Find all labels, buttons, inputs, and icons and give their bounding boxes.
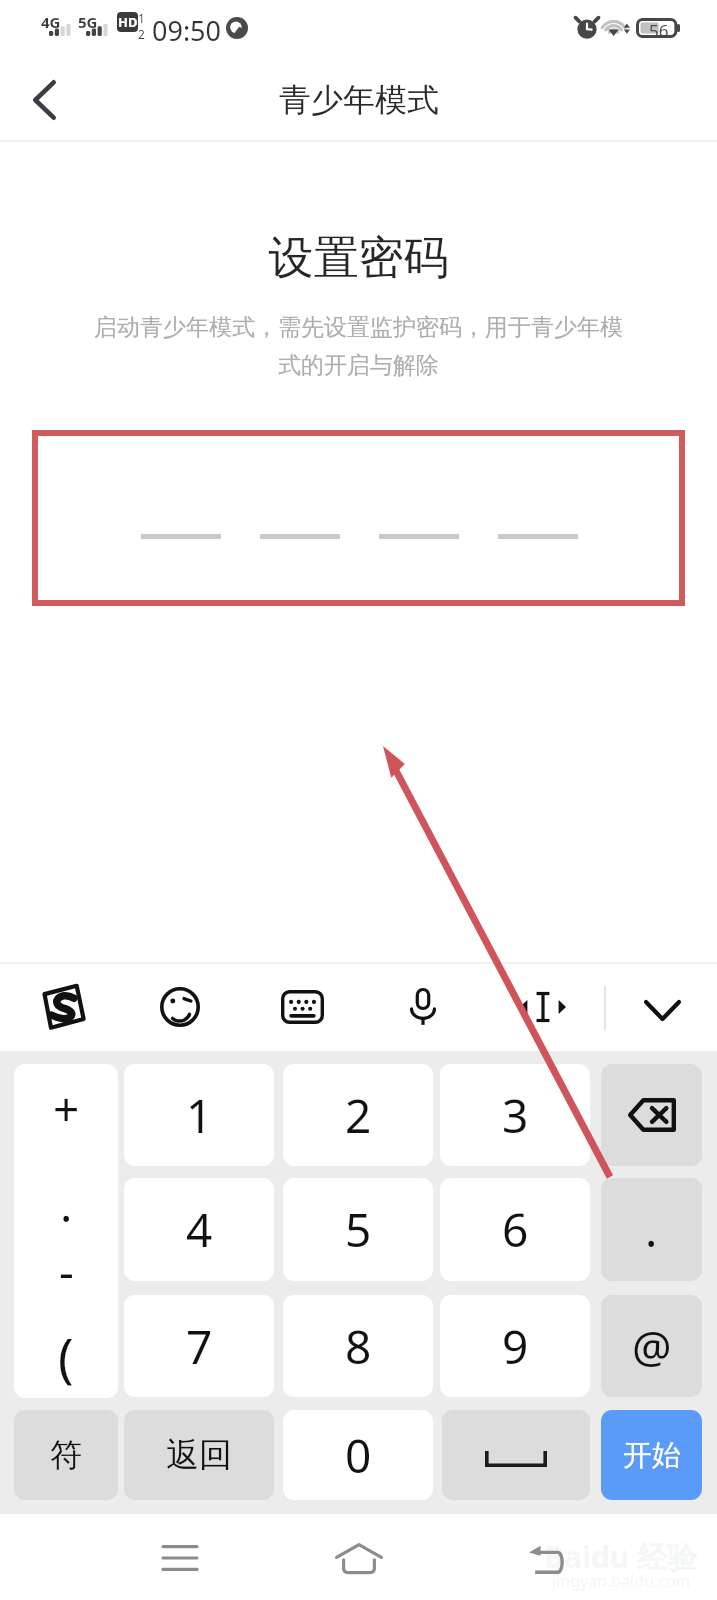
staticText: 7 xyxy=(186,1315,213,1378)
button[interactable]: 4 xyxy=(124,1178,274,1281)
staticText: 3 xyxy=(502,1084,529,1147)
button[interactable]: 3 xyxy=(440,1064,590,1166)
staticText: 4G xyxy=(41,12,61,32)
staticText: 56 xyxy=(649,19,669,42)
button[interactable]: 6 xyxy=(440,1178,590,1281)
staticText: 1 xyxy=(138,10,145,26)
button[interactable]: 7 xyxy=(124,1295,274,1397)
staticText: 设置密码 xyxy=(0,230,717,287)
button[interactable] xyxy=(38,436,679,600)
button[interactable]: Back xyxy=(486,1515,606,1600)
staticText: 5 xyxy=(345,1198,372,1261)
staticText: 4 xyxy=(186,1198,213,1261)
button[interactable]: 返回 xyxy=(124,1410,274,1500)
button[interactable]: Home xyxy=(299,1515,419,1600)
button[interactable]: Hide keyboard xyxy=(612,962,712,1051)
staticText: jingyan.baidu.com xyxy=(552,1570,691,1592)
button[interactable]: Voice input xyxy=(375,962,471,1051)
staticText: 09:50 xyxy=(152,12,222,49)
button[interactable]: Sogou input xyxy=(14,962,110,1051)
staticText: Baidu 经验 xyxy=(544,1536,698,1577)
staticText: 2 xyxy=(345,1084,372,1147)
staticText: 青少年模式 xyxy=(279,80,439,120)
button[interactable]: 0 xyxy=(283,1410,433,1500)
staticText: + xyxy=(53,1077,80,1140)
staticText: . xyxy=(645,1198,658,1261)
staticText: 开始 xyxy=(623,1437,681,1474)
staticText: 5G xyxy=(78,12,98,32)
staticText: . xyxy=(60,1173,73,1236)
staticText: 6 xyxy=(502,1198,529,1261)
button[interactable]: Keyboard layout xyxy=(254,962,350,1051)
button[interactable]: 8 xyxy=(283,1295,433,1397)
button[interactable]: Back xyxy=(8,58,80,140)
staticText: 9 xyxy=(502,1315,529,1378)
staticText: ( xyxy=(58,1321,74,1392)
button[interactable]: Backspace xyxy=(601,1064,702,1166)
staticText: - xyxy=(59,1239,74,1302)
button[interactable]: + xyxy=(14,1064,118,1398)
staticText: 1 xyxy=(186,1084,213,1147)
button[interactable]: 开始 xyxy=(601,1410,702,1500)
staticText: 8 xyxy=(345,1315,372,1378)
staticText: @ xyxy=(632,1316,672,1376)
staticText: 符 xyxy=(50,1435,82,1475)
button[interactable]: @ xyxy=(601,1295,702,1397)
button[interactable]: Cursor xyxy=(495,962,591,1051)
button[interactable]: 符 xyxy=(14,1410,118,1500)
button[interactable]: Emoji xyxy=(132,962,228,1051)
button[interactable]: 1 xyxy=(124,1064,274,1166)
button[interactable]: 2 xyxy=(283,1064,433,1166)
button[interactable]: Space xyxy=(442,1410,590,1500)
button[interactable]: 9 xyxy=(440,1295,590,1397)
staticText: HD xyxy=(118,13,138,31)
button[interactable]: Recents xyxy=(120,1515,240,1600)
staticText: 2 xyxy=(138,26,145,42)
staticText: 启动青少年模式，需先设置监护密码，用于青少年模 式的开启与解除 xyxy=(0,313,717,380)
button[interactable]: . xyxy=(601,1178,702,1281)
button[interactable]: 5 xyxy=(283,1178,433,1281)
staticText: 返回 xyxy=(166,1434,232,1476)
staticText: 0 xyxy=(345,1424,372,1487)
